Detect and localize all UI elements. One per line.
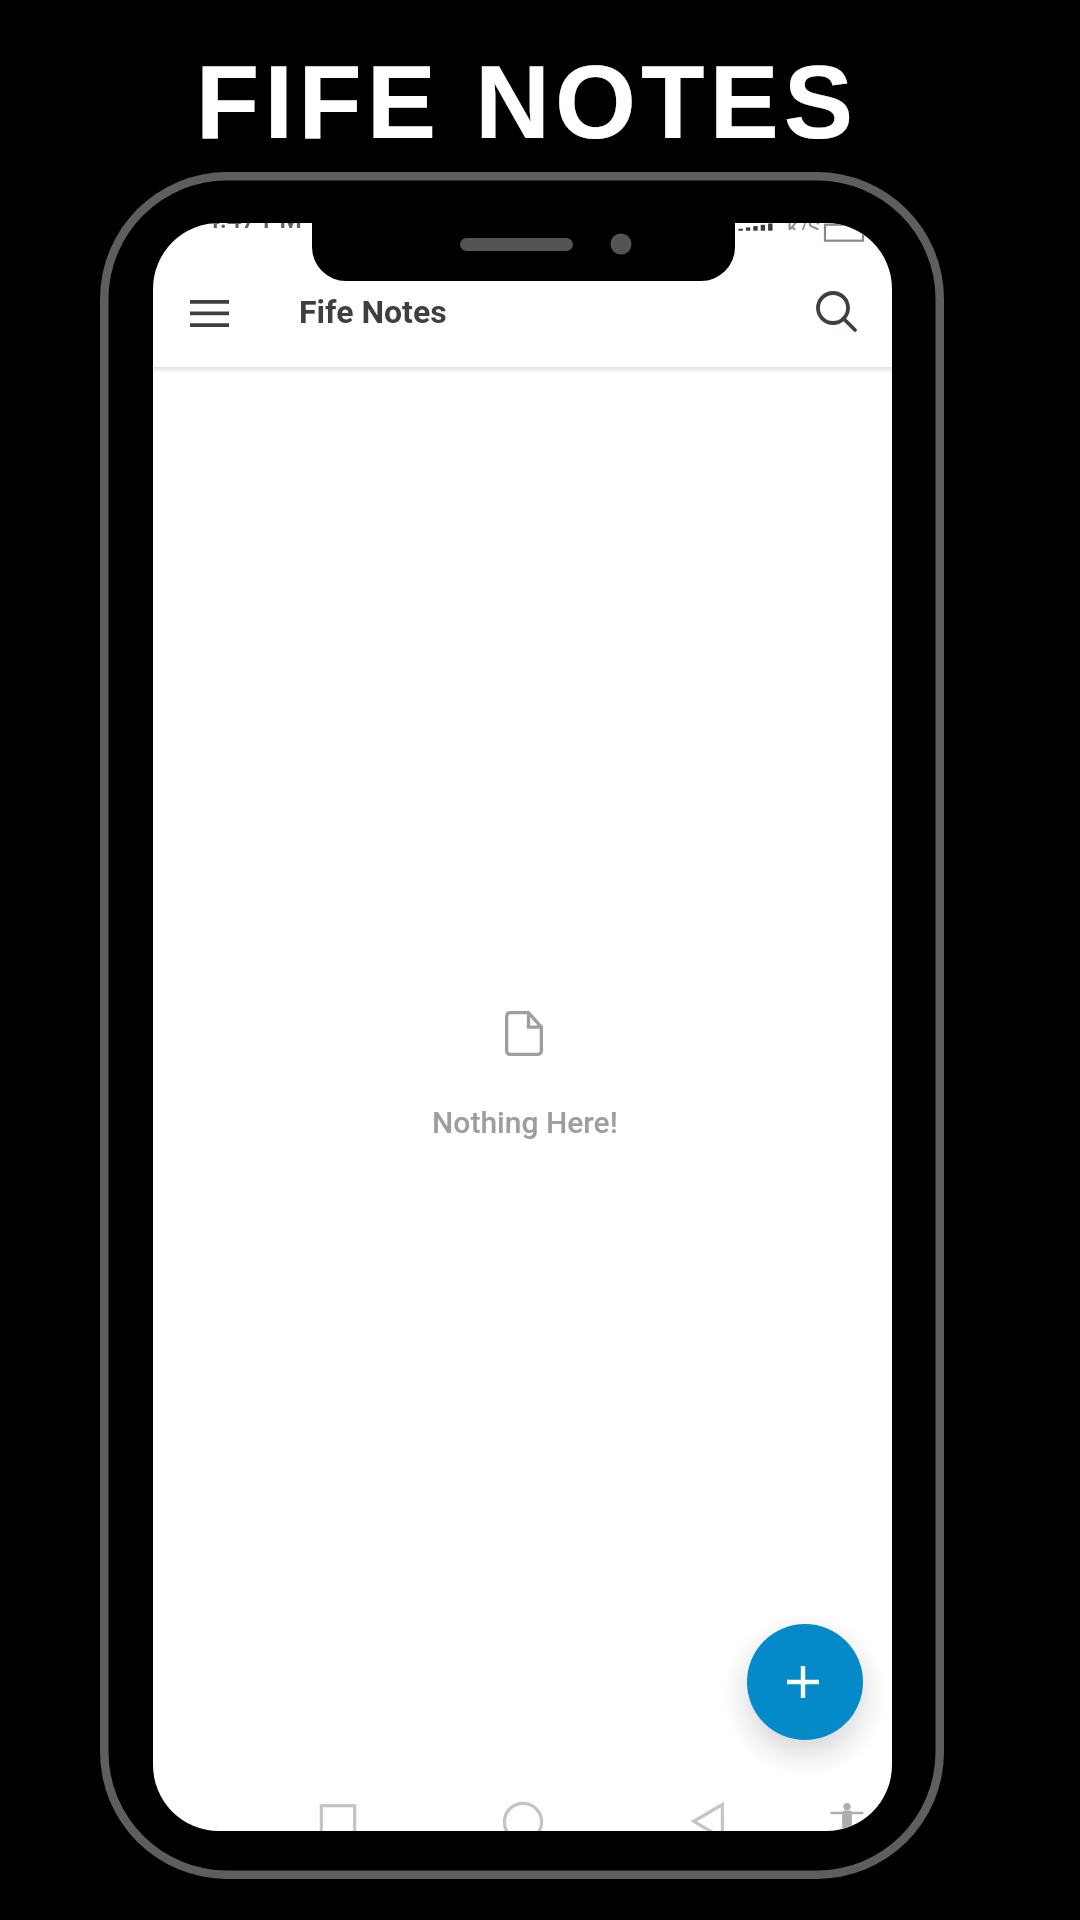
button[interactable]: Add note [747, 1624, 863, 1740]
button[interactable]: Back [664, 1783, 752, 1830]
staticText: Fife Notes [299, 293, 447, 331]
staticText: 4:47 PM [205, 223, 303, 228]
button[interactable]: Home [479, 1783, 567, 1830]
staticText: K/S [787, 223, 820, 230]
staticText: FIFE NOTES [0, 44, 1067, 160]
staticText: Nothing Here! [432, 1105, 618, 1140]
button[interactable]: Open navigation menu [170, 281, 249, 345]
button[interactable]: Search [801, 278, 881, 358]
button[interactable]: Accessibility menu [803, 1783, 891, 1830]
button[interactable]: Recent apps [294, 1783, 382, 1830]
